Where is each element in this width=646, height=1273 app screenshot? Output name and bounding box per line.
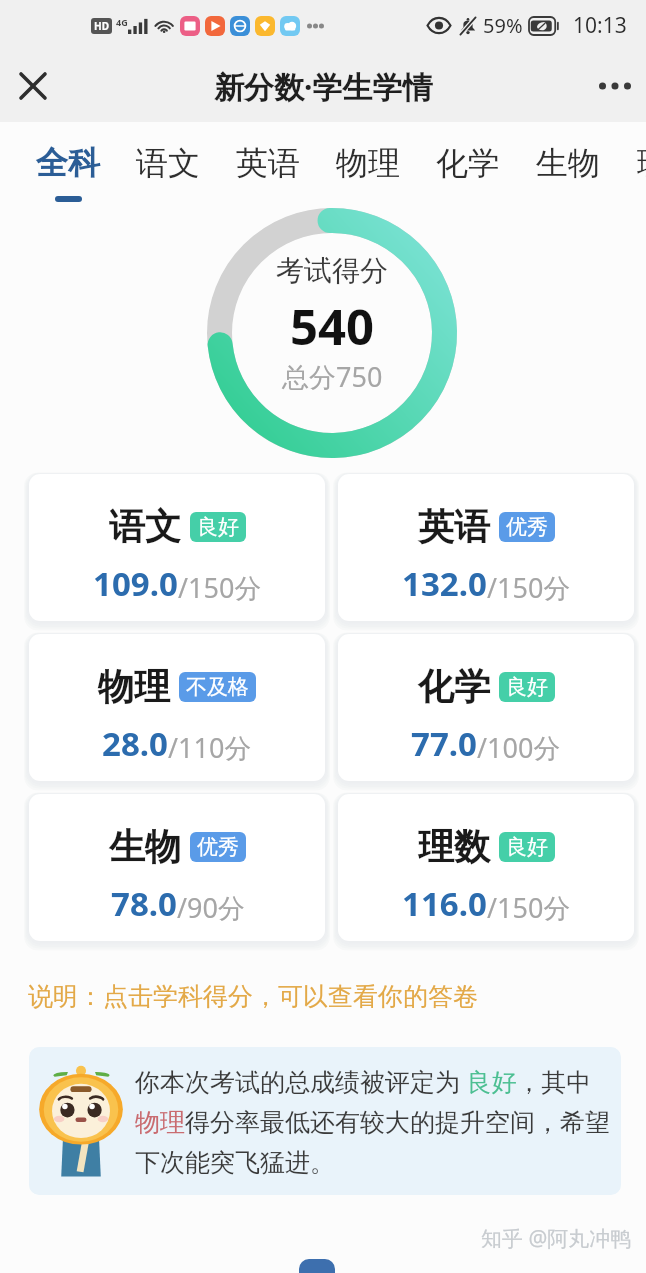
button[interactable]: 化学 (338, 634, 634, 781)
button[interactable]: 英语 (218, 122, 318, 208)
staticText: 优秀 (506, 514, 548, 540)
staticText: /90分 (177, 889, 245, 926)
button[interactable]: 生物 (518, 122, 618, 208)
staticText: /150分 (487, 569, 571, 606)
staticText: 语文 (136, 143, 200, 183)
staticText: 知乎 @阿丸冲鸭 (481, 1224, 632, 1253)
staticText: 全科 (36, 143, 100, 183)
staticText: 良好 (506, 674, 548, 700)
staticText: 优秀 (197, 834, 239, 860)
staticText: 59% (483, 12, 523, 39)
button[interactable]: More options (590, 61, 640, 111)
button[interactable]: Close (10, 63, 56, 109)
button[interactable]: 生物 (29, 794, 325, 941)
staticText: 4G (116, 16, 128, 28)
button[interactable]: 物理 (318, 122, 418, 208)
staticText: 语文 (109, 504, 181, 549)
staticText: 10:13 (573, 11, 627, 40)
staticText: /100分 (477, 729, 561, 766)
staticText: 化学 (418, 664, 490, 709)
staticText: 78.0 (111, 881, 177, 926)
staticText: 良好 (197, 514, 239, 540)
staticText: /150分 (487, 889, 571, 926)
button[interactable]: 语文 (29, 474, 325, 621)
staticText: 新分数·学生学情 (214, 66, 433, 107)
button[interactable]: 英语 (338, 474, 634, 621)
staticText: 英语 (418, 504, 490, 549)
staticText: 总分750 (282, 358, 383, 395)
staticText: HD (94, 19, 109, 33)
staticText: 生物 (109, 824, 181, 869)
staticText: 132.0 (402, 561, 487, 606)
button[interactable]: 理数 (637, 122, 646, 208)
staticText: /150分 (178, 569, 262, 606)
staticText: 物理 (336, 143, 400, 183)
button[interactable]: 语文 (118, 122, 218, 208)
staticText: 英语 (236, 143, 300, 183)
staticText: 物理 (98, 664, 170, 709)
staticText: 良好 (506, 834, 548, 860)
button[interactable]: 化学 (418, 122, 518, 208)
staticText: 说明：点击学科得分，可以查看你的答卷 (28, 981, 478, 1012)
staticText: /110分 (168, 729, 252, 766)
staticText: 生物 (536, 143, 600, 183)
staticText: 考试得分 (276, 253, 388, 288)
staticText: 理数 (418, 824, 490, 869)
staticText: 不及格 (186, 674, 249, 700)
button[interactable]: 理数 (338, 794, 634, 941)
staticText: 理数 (637, 143, 646, 183)
staticText: 116.0 (402, 881, 487, 926)
button[interactable]: Action button (299, 1259, 335, 1273)
staticText: 77.0 (411, 721, 477, 766)
staticText: 你本次考试的总成绩被评定为 良好，其中 物理得分率最低还有较大的提升空间，希望 … (135, 1064, 610, 1178)
staticText: 化学 (436, 143, 500, 183)
staticText: 109.0 (93, 561, 178, 606)
staticText: 540 (290, 293, 375, 360)
staticText: 28.0 (102, 721, 168, 766)
button[interactable]: 物理 (29, 634, 325, 781)
button[interactable]: 全科 (18, 122, 118, 208)
